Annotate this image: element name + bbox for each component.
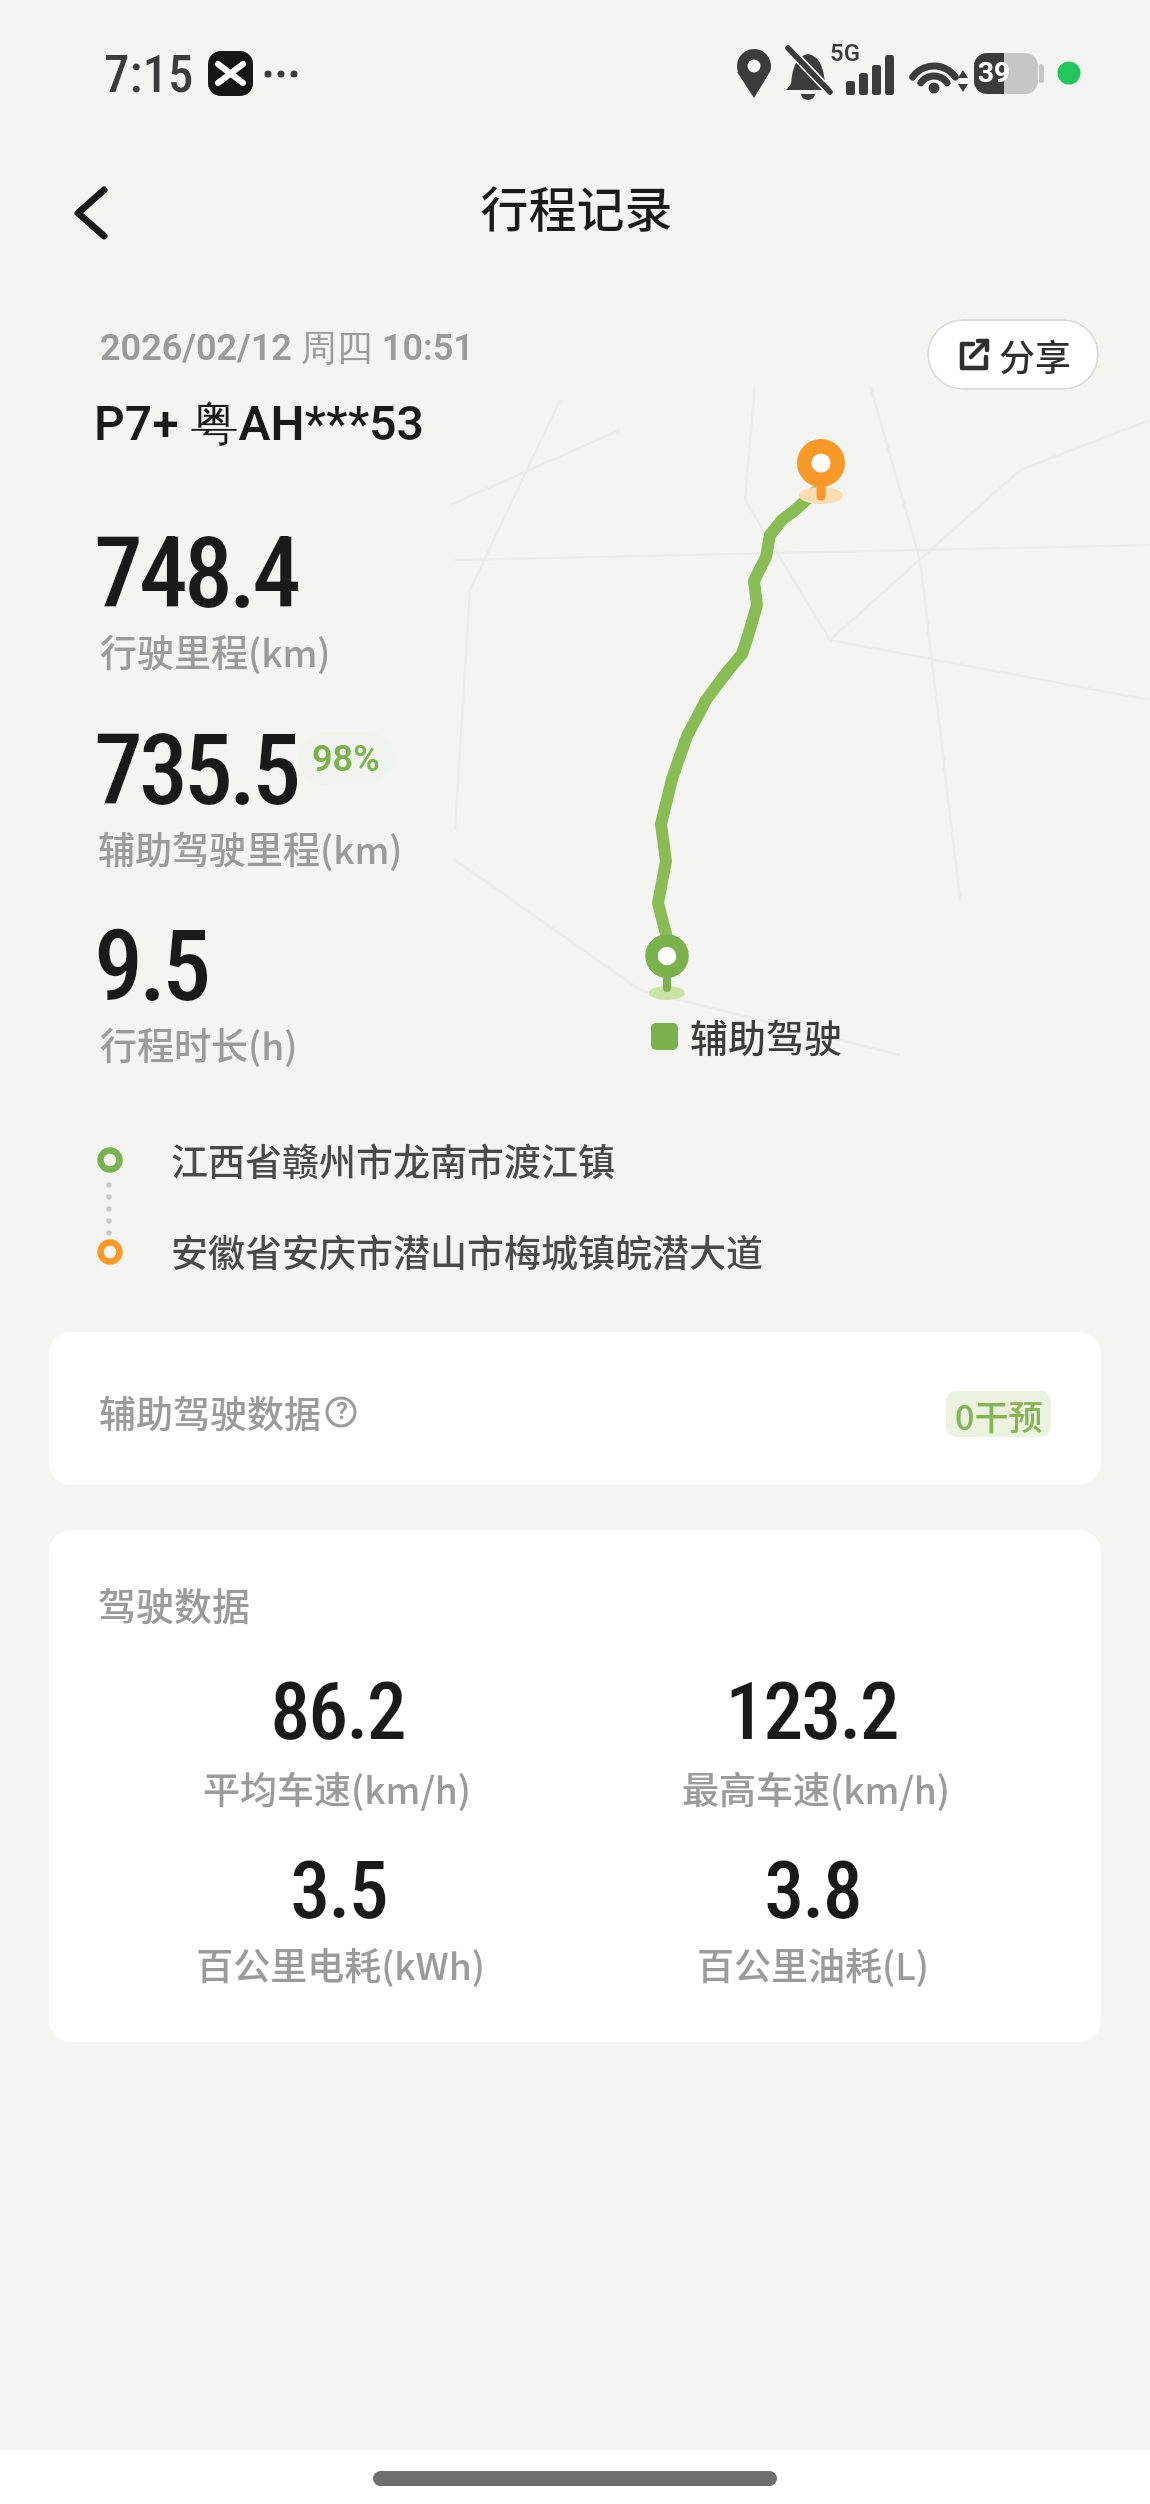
staticText: 9.5 bbox=[94, 909, 208, 1024]
button[interactable] bbox=[58, 176, 130, 248]
staticText: 辅助驾驶数据 bbox=[99, 1385, 321, 1439]
staticText: 分享 bbox=[999, 329, 1072, 381]
staticText: 735.5 bbox=[94, 713, 298, 828]
staticText: 2026/02/12 周四 10:51 bbox=[100, 325, 474, 370]
staticText: 5G bbox=[830, 39, 861, 67]
staticText: 39 bbox=[978, 56, 1010, 89]
staticText: 行程时长(h) bbox=[100, 1017, 298, 1071]
staticText: 最高车速(km/h) bbox=[682, 1761, 950, 1815]
staticText: 行程记录 bbox=[480, 171, 673, 241]
staticText: 748.4 bbox=[94, 516, 298, 631]
button[interactable]: 分享 bbox=[927, 319, 1099, 390]
staticText: 0干预 bbox=[955, 1391, 1043, 1437]
staticText: 98% bbox=[312, 738, 380, 780]
staticText: 驾驶数据 bbox=[98, 1576, 251, 1631]
staticText: 平均车速(km/h) bbox=[203, 1761, 471, 1815]
staticText: 辅助驾驶 bbox=[690, 1008, 843, 1063]
staticText: 百公里油耗(L) bbox=[697, 1937, 929, 1991]
button[interactable]: 0干预 bbox=[946, 1391, 1051, 1437]
staticText: 7:15 bbox=[104, 45, 194, 105]
staticText: 江西省赣州市龙南市渡江镇 bbox=[171, 1133, 615, 1187]
staticText: 3.5 bbox=[290, 1844, 387, 1938]
staticText: 辅助驾驶里程(km) bbox=[98, 821, 403, 875]
staticText: 百公里电耗(kWh) bbox=[196, 1937, 485, 1991]
staticText: 3.8 bbox=[764, 1844, 861, 1938]
staticText: ? bbox=[336, 1397, 348, 1425]
staticText: 行驶里程(km) bbox=[100, 624, 331, 678]
staticText: 123.2 bbox=[725, 1665, 898, 1759]
staticText: 86.2 bbox=[270, 1665, 405, 1759]
staticText: 安徽省安庆市潜山市梅城镇皖潜大道 bbox=[171, 1224, 763, 1278]
staticText: P7+ 粤AH***53 bbox=[94, 394, 425, 454]
